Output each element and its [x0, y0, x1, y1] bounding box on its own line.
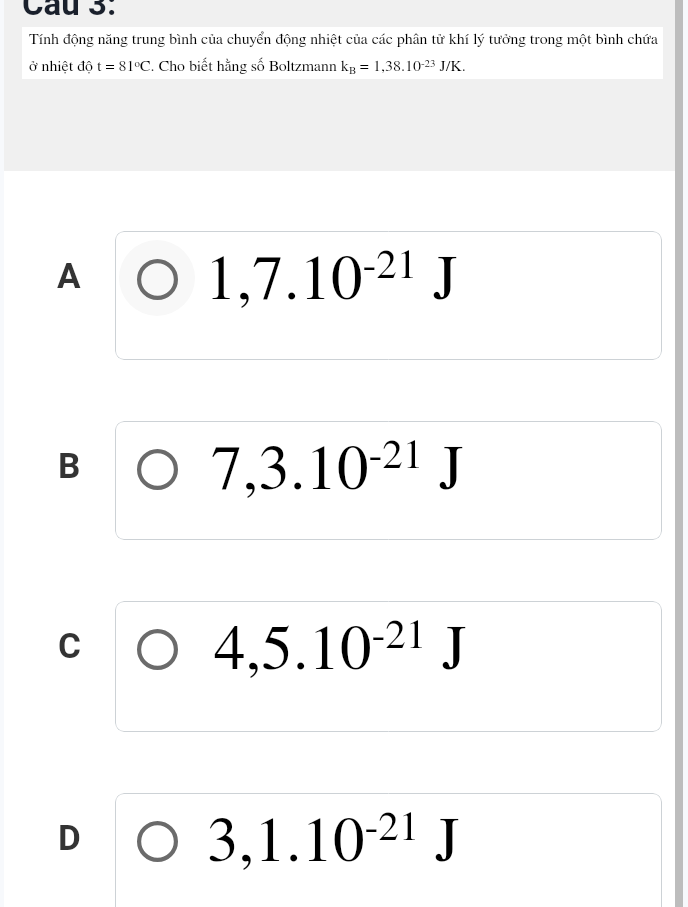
staticText: 1,7.10-21 J — [205, 245, 458, 311]
staticText: B — [58, 446, 81, 487]
staticText: A — [57, 256, 81, 297]
staticText: D — [58, 818, 81, 859]
staticText: C — [58, 626, 81, 667]
button[interactable]: Chọn đáp án B — [115, 421, 662, 540]
button[interactable]: Chọn đáp án D — [115, 793, 662, 907]
staticText: Câu 3: — [22, 0, 117, 23]
button[interactable]: Chọn đáp án A — [115, 231, 662, 360]
staticText: Tính động năng trung bình của chuyển độn… — [29, 31, 659, 47]
staticText: 3,1.10-21 J — [207, 807, 460, 873]
other: Chọn đáp án D — [137, 821, 178, 862]
staticText: 7,3.10-21 J — [211, 435, 464, 501]
button[interactable]: Chọn đáp án C — [115, 601, 662, 732]
other: Chọn đáp án A — [137, 259, 178, 300]
other: Chọn đáp án B — [137, 449, 178, 490]
other: Chọn đáp án C — [137, 629, 178, 670]
staticText: ở nhiệt độ t = 81oC. Cho biết hằng số Bo… — [29, 58, 466, 76]
staticText: 4,5.10-21 J — [214, 615, 467, 681]
